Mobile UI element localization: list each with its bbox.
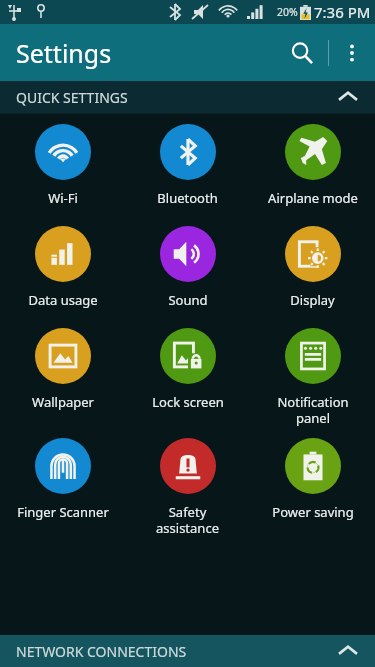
staticText: Display [290,291,335,309]
staticText: Power saving [272,503,354,521]
staticText: 7:36 PM [314,2,371,22]
staticText: Settings [16,36,112,70]
button[interactable]: Power saving [250,438,375,521]
button[interactable]: Search [276,27,328,79]
staticText: NETWORK CONNECTIONS [16,642,187,661]
staticText: Notification panel [277,393,349,426]
button[interactable]: Wallpaper [0,328,125,411]
button[interactable]: Sound [125,226,250,309]
staticText: Data usage [28,291,98,309]
button[interactable]: NETWORK CONNECTIONS [0,635,375,667]
button[interactable]: Airplane mode [250,124,375,207]
staticText: QUICK SETTINGS [16,88,128,107]
staticText: Wallpaper [32,393,94,411]
staticText: Finger Scanner [17,503,109,521]
button[interactable]: Bluetooth [125,124,250,207]
staticText: Bluetooth [157,189,218,207]
button[interactable]: More options [329,30,375,76]
staticText: Airplane mode [268,189,358,207]
staticText: Sound [168,291,208,309]
staticText: Safety assistance [156,503,219,536]
staticText: 20% [277,5,298,19]
button[interactable]: Safety assistance [125,438,250,536]
staticText: Wi-Fi [48,189,78,207]
button[interactable]: Display [250,226,375,309]
button[interactable]: Notification panel [250,328,375,426]
button[interactable]: Finger Scanner [0,438,125,521]
button[interactable]: Wi-Fi [0,124,125,207]
button[interactable]: QUICK SETTINGS [0,81,375,113]
button[interactable]: Data usage [0,226,125,309]
staticText: Lock screen [152,393,224,411]
button[interactable]: Lock screen [125,328,250,411]
